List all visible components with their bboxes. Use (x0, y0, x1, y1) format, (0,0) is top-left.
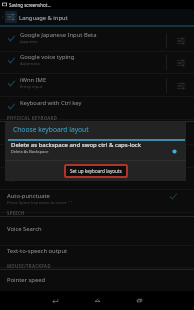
button[interactable]: Auto-punctuate (0, 190, 194, 213)
button[interactable]: Pointer speed (0, 274, 194, 297)
staticText: Text-to-speech output (7, 247, 68, 255)
button[interactable]: Google voice typing (0, 51, 194, 74)
button[interactable]: Set up keyboard layouts (64, 164, 128, 178)
staticText: Hardware key (7, 147, 45, 155)
staticText: Japanese (20, 39, 38, 45)
button[interactable]: Delete as backspace and swop ctrl & caps… (5, 140, 186, 154)
button[interactable]: Google Japanese Input Beta (0, 29, 194, 52)
staticText: Delete as backspace and swop ctrl & caps… (11, 141, 141, 149)
button[interactable]: Keyboard with Ctrl key (0, 97, 194, 120)
button[interactable]: Back (34, 291, 76, 310)
staticText: iWnn IME (20, 76, 47, 84)
button[interactable]: Settings (167, 29, 194, 52)
staticText: Emoji input (20, 84, 43, 90)
button[interactable]: Recent apps (118, 291, 160, 310)
staticText: Language & input (19, 14, 68, 22)
staticText: Capitalize the first word of each senten… (7, 177, 88, 183)
button[interactable]: iWnn IME (0, 74, 194, 97)
staticText: Saving screenshot... (9, 2, 52, 8)
button[interactable]: Navigate up (0, 9, 5, 25)
button[interactable]: Voice Search (0, 223, 194, 246)
button[interactable]: Home (76, 291, 118, 310)
staticText: On (7, 155, 13, 161)
staticText: Delete As Backspace (11, 149, 49, 154)
button[interactable]: Keyboard layout (0, 122, 194, 145)
staticText: Choose keyboard layout (13, 125, 89, 134)
button[interactable]: Settings (167, 51, 194, 74)
button[interactable]: Text-to-speech output (0, 245, 194, 268)
staticText: Google Japanese Input Beta (20, 31, 97, 39)
staticText: Google voice typing (20, 53, 75, 61)
staticText: Auto-punctuate (7, 192, 50, 200)
staticText: Automatic (20, 61, 41, 67)
staticText: MOUSE/TRACKPAD (7, 263, 51, 269)
staticText: SPEECH (7, 210, 25, 216)
staticText: Keyboard layout (7, 124, 52, 132)
button[interactable]: Auto-capitalization (0, 167, 194, 190)
button[interactable]: Settings (167, 74, 194, 97)
staticText: Pointer speed (7, 276, 46, 284)
button[interactable]: Hardware key (0, 145, 194, 168)
staticText: Keyboard with Ctrl key (20, 99, 82, 107)
staticText: Set up keyboard layouts (70, 168, 122, 174)
staticText: PHYSICAL KEYBOARD (7, 115, 58, 121)
staticText: Voice Search (7, 225, 42, 233)
staticText: Press Space key twice to insert "." (7, 200, 73, 206)
